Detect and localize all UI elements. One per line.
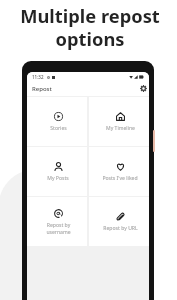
button[interactable]: Repost by URL (89, 197, 149, 246)
staticText: My Posts (47, 175, 69, 182)
button[interactable]: Stories (27, 97, 87, 146)
staticText: 11:32 (32, 74, 44, 80)
button[interactable]: My Posts (27, 147, 87, 196)
staticText: Repost (32, 85, 52, 93)
staticText: Repost by URL (103, 225, 138, 232)
button[interactable]: My Timeline (89, 97, 149, 146)
staticText: Repost by username (46, 222, 71, 235)
staticText: Stories (50, 125, 67, 132)
button[interactable]: Settings (138, 84, 149, 95)
button[interactable]: Repost by username (27, 197, 87, 246)
staticText: Multiple repost options (20, 3, 160, 51)
staticText: My Timeline (106, 125, 135, 132)
button[interactable]: Posts I've liked (89, 147, 149, 196)
staticText: Posts I've liked (102, 175, 138, 182)
